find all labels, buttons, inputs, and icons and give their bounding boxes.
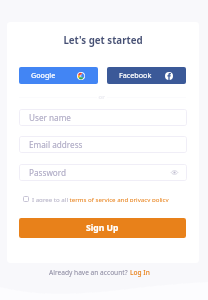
button[interactable]: User name	[19, 109, 187, 126]
staticText: Let's get started	[7, 34, 199, 47]
staticText: Email address	[29, 139, 83, 150]
button[interactable]: Google	[19, 67, 98, 84]
other: Show password	[171, 170, 178, 175]
staticText: Already have an account?	[49, 268, 130, 277]
button[interactable]: Sign Up	[19, 218, 186, 238]
staticText: Password	[29, 167, 67, 178]
staticText: User name	[29, 112, 71, 123]
staticText: Google	[31, 70, 56, 80]
staticText: or	[97, 93, 107, 101]
button[interactable]: Email address	[19, 136, 187, 153]
button[interactable]: Password	[19, 164, 187, 181]
button[interactable]: Facebook	[107, 67, 186, 84]
button[interactable]: Log In	[130, 268, 150, 277]
button[interactable]: I agree to all terms of service and priv…	[23, 195, 169, 202]
staticText: Facebook	[119, 70, 152, 80]
staticText: I agree to all terms of service and priv…	[32, 195, 169, 202]
staticText: Sign Up	[86, 222, 119, 234]
